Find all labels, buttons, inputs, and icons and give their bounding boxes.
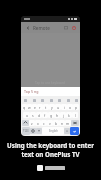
staticText: l bbox=[75, 113, 76, 118]
button[interactable]: a bbox=[23, 112, 30, 118]
button[interactable]: t bbox=[43, 104, 49, 110]
button[interactable]: ?123 bbox=[22, 127, 30, 135]
button[interactable]: Suggestion 1 bbox=[23, 98, 27, 102]
staticText: x bbox=[37, 121, 39, 126]
staticText: o bbox=[69, 105, 72, 110]
button[interactable]: c bbox=[41, 120, 47, 126]
staticText: s bbox=[32, 113, 34, 118]
staticText: y bbox=[51, 105, 53, 110]
staticText: a bbox=[26, 113, 28, 118]
staticText: n bbox=[61, 121, 64, 126]
button[interactable]: r bbox=[37, 104, 43, 110]
button[interactable]: Backspace bbox=[71, 120, 79, 126]
button[interactable]: d bbox=[36, 112, 42, 118]
button[interactable]: l bbox=[72, 112, 78, 118]
button[interactable]: Cast bbox=[62, 24, 69, 31]
staticText: t bbox=[45, 105, 47, 110]
button[interactable]: m bbox=[65, 120, 71, 126]
staticText: p bbox=[75, 105, 78, 110]
button[interactable]: f bbox=[42, 112, 48, 118]
button[interactable]: Suggestion 5 bbox=[57, 98, 61, 102]
staticText: c bbox=[43, 121, 45, 126]
button[interactable]: z bbox=[29, 120, 35, 126]
button[interactable]: Emoji bbox=[30, 128, 36, 134]
staticText: b bbox=[55, 121, 58, 126]
staticText: q bbox=[23, 105, 26, 110]
button[interactable]: Suggestion 3 bbox=[40, 98, 44, 102]
button[interactable]: u bbox=[55, 104, 61, 110]
button[interactable]: o bbox=[67, 104, 73, 110]
button[interactable]: h bbox=[54, 112, 60, 118]
staticText: English bbox=[49, 129, 58, 133]
staticText: u bbox=[57, 105, 60, 110]
button[interactable]: Brand logo bbox=[37, 164, 65, 171]
staticText: Using the keyboard to enter bbox=[7, 141, 94, 149]
button[interactable]: Power bbox=[70, 24, 77, 31]
staticText: m bbox=[66, 121, 70, 126]
button[interactable]: Voice input bbox=[36, 128, 42, 134]
staticText: d bbox=[38, 113, 41, 118]
button[interactable]: x bbox=[35, 120, 41, 126]
button[interactable]: Suggestion 4 bbox=[49, 98, 53, 102]
staticText: i bbox=[64, 105, 65, 110]
button[interactable]: Suggestion 2 bbox=[32, 98, 36, 102]
button[interactable]: Enter bbox=[70, 127, 79, 135]
button[interactable]: w bbox=[27, 104, 32, 110]
button[interactable]: q bbox=[22, 104, 27, 110]
staticText: v bbox=[49, 121, 51, 126]
staticText: k bbox=[68, 113, 70, 118]
staticText: f bbox=[44, 113, 46, 118]
button[interactable]: s bbox=[30, 112, 36, 118]
staticText: Top 5 ng bbox=[24, 89, 39, 94]
button[interactable]: b bbox=[53, 120, 59, 126]
button[interactable]: n bbox=[59, 120, 65, 126]
button[interactable]: e bbox=[32, 104, 37, 110]
button[interactable]: Suggestion 7 bbox=[74, 98, 78, 102]
staticText: e bbox=[34, 105, 36, 110]
staticText: r bbox=[39, 105, 41, 110]
staticText: w bbox=[28, 105, 31, 110]
staticText: text on OnePlus TV bbox=[21, 150, 80, 158]
button[interactable]: g bbox=[48, 112, 54, 118]
button[interactable]: y bbox=[49, 104, 55, 110]
button[interactable]: k bbox=[66, 112, 72, 118]
staticText: ?123 bbox=[23, 129, 29, 133]
staticText: h bbox=[56, 113, 59, 118]
button[interactable]: p bbox=[73, 104, 79, 110]
button[interactable]: Back bbox=[24, 24, 31, 31]
button[interactable]: i bbox=[61, 104, 67, 110]
button[interactable]: Suggestion 6 bbox=[66, 98, 70, 102]
button[interactable]: j bbox=[60, 112, 66, 118]
button[interactable]: Space bbox=[42, 127, 64, 135]
staticText: j bbox=[63, 113, 64, 118]
staticText: g bbox=[50, 113, 53, 118]
button[interactable]: Shift bbox=[22, 120, 29, 126]
button[interactable]: v bbox=[47, 120, 53, 126]
staticText: z bbox=[31, 121, 33, 126]
button[interactable]: Period bbox=[64, 128, 70, 134]
staticText: Remote bbox=[33, 25, 50, 31]
